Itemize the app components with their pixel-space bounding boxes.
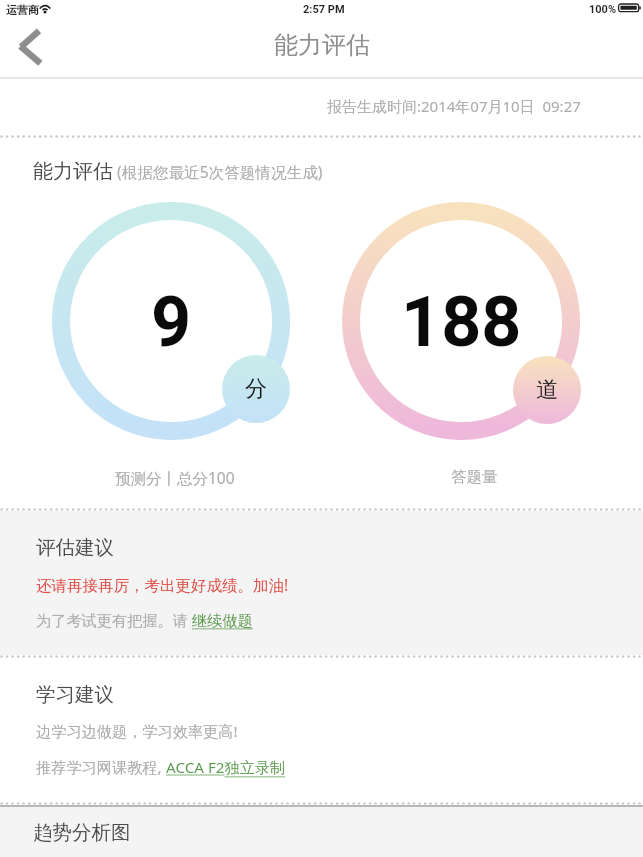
staticText: 运营商	[6, 3, 39, 17]
staticText: 能力评估	[33, 159, 113, 184]
button[interactable]: Back	[0, 26, 62, 77]
button[interactable]: ACCA F2独立录制	[166, 757, 286, 778]
staticText: 道	[536, 376, 558, 404]
staticText: 2:57 PM	[303, 3, 345, 16]
staticText: 趋势分析图	[33, 820, 131, 845]
staticText: 分	[245, 375, 267, 403]
staticText: 预测分丨总分100	[115, 467, 235, 488]
staticText: 答题量	[451, 467, 498, 487]
staticText: 学习建议	[36, 682, 114, 707]
staticText: 报告生成时间:2014年07月10日 09:27	[327, 96, 581, 116]
staticText: 继续做题	[192, 611, 253, 630]
staticText: 为了考试更有把握。请	[36, 610, 192, 631]
staticText: 188	[401, 281, 522, 363]
staticText: 100%	[589, 3, 617, 16]
staticText: ACCA F2独立录制	[166, 757, 286, 778]
staticText: 边学习边做题，学习效率更高!	[36, 721, 238, 742]
staticText: 评估建议	[36, 535, 114, 560]
button[interactable]: 继续做题	[192, 611, 253, 630]
staticText: (根据您最近5次答题情况生成)	[117, 161, 323, 182]
staticText: 能力评估	[274, 30, 370, 60]
staticText: 还请再接再厉，考出更好成绩。加油!	[36, 574, 289, 595]
staticText: 推荐学习网课教程,	[36, 757, 166, 778]
staticText: 9	[151, 281, 192, 363]
